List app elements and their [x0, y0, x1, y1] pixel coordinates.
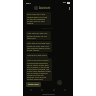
staticText: Assistant [39, 6, 51, 10]
button[interactable]: I can help you plan the whole itinerary … [26, 31, 51, 40]
button[interactable]: Want me to add these to your calendar? [26, 53, 48, 63]
button[interactable]: Account [34, 6, 38, 10]
staticText: Today 10:24 [42, 27, 54, 30]
button[interactable]: Here is the full summary of everything w… [26, 58, 52, 81]
button[interactable]: Tab 2 [39, 87, 45, 93]
button[interactable]: Tab 1 [28, 87, 34, 93]
staticText: I can help you plan the whole itinerary … [27, 32, 50, 39]
button[interactable]: More options [67, 6, 71, 10]
button[interactable]: Send [57, 80, 62, 85]
staticText: Sure! Here are a few simple ideas you co… [27, 13, 50, 24]
button[interactable]: Show more [26, 82, 41, 87]
button[interactable]: Tab 3 [51, 87, 57, 93]
staticText: Show more [28, 83, 39, 86]
staticText: Want me to add these to your calendar? [27, 54, 47, 59]
button[interactable]: Tab 4 [62, 87, 68, 93]
staticText: Yes [27, 59, 31, 62]
staticText: 4G [63, 1, 66, 4]
staticText: Start with a morning walk along the rive… [27, 42, 51, 51]
button[interactable]: Start with a morning walk along the rive… [26, 41, 52, 52]
staticText: 9:41 [26, 1, 31, 4]
button[interactable]: Sure! Here are a few simple ideas you co… [26, 12, 51, 25]
staticText: Here is the full summary of everything w… [27, 59, 51, 80]
